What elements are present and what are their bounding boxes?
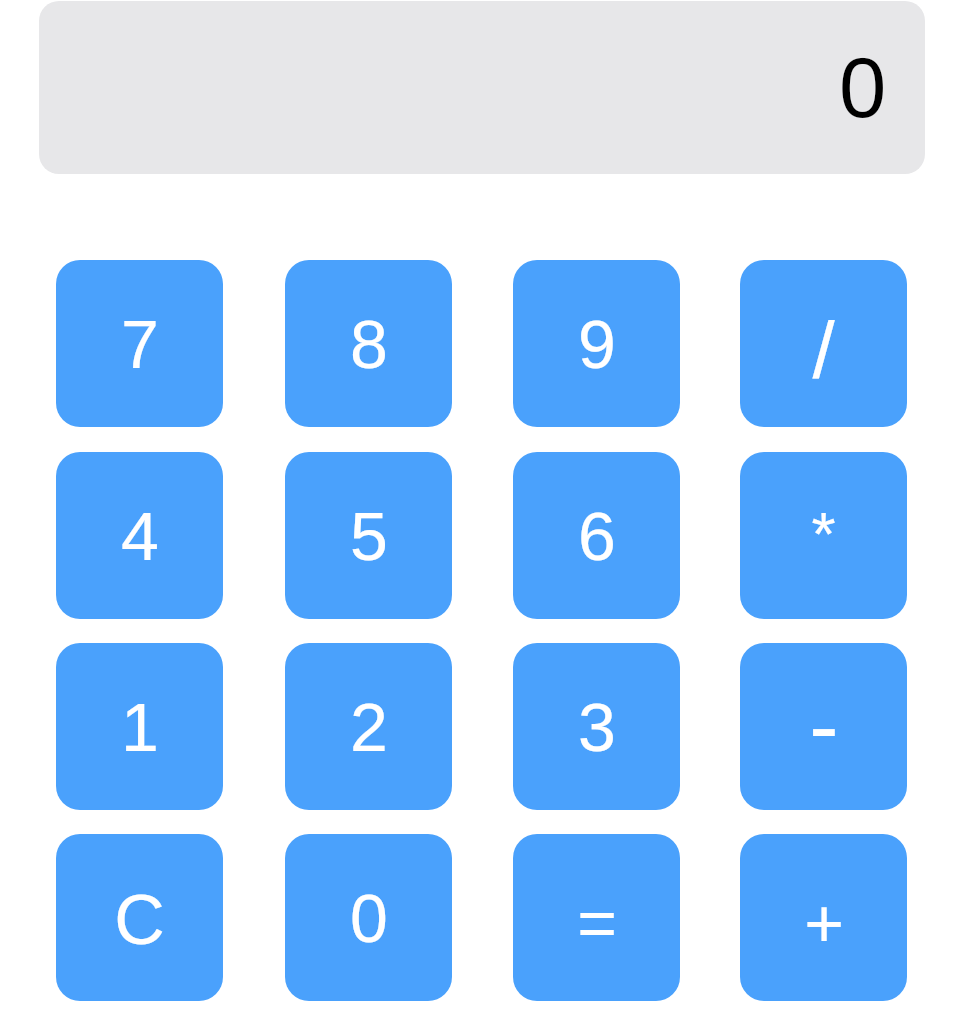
button[interactable]: 0 xyxy=(39,1,925,174)
staticText: / xyxy=(812,306,835,395)
staticText: - xyxy=(809,676,839,774)
staticText: 8 xyxy=(350,306,388,382)
button[interactable]: 9 xyxy=(513,260,680,427)
staticText: C xyxy=(114,881,165,959)
staticText: 4 xyxy=(121,498,159,574)
button[interactable]: C xyxy=(56,834,223,1001)
button[interactable]: 4 xyxy=(56,452,223,619)
button[interactable]: 5 xyxy=(285,452,452,619)
staticText: 7 xyxy=(121,306,159,382)
staticText: + xyxy=(804,885,844,961)
button[interactable]: 1 xyxy=(56,643,223,810)
button[interactable]: 0 xyxy=(285,834,452,1001)
button[interactable]: 2 xyxy=(285,643,452,810)
button[interactable]: * xyxy=(740,452,907,619)
button[interactable]: - xyxy=(740,643,907,810)
button[interactable]: 7 xyxy=(56,260,223,427)
staticText: * xyxy=(811,499,836,568)
staticText: 6 xyxy=(578,498,616,574)
button[interactable]: = xyxy=(513,834,680,1001)
button[interactable]: + xyxy=(740,834,907,1001)
staticText: 2 xyxy=(350,689,388,765)
staticText: 9 xyxy=(578,306,616,382)
staticText: 5 xyxy=(350,498,388,574)
button[interactable]: 3 xyxy=(513,643,680,810)
button[interactable]: 6 xyxy=(513,452,680,619)
button[interactable]: / xyxy=(740,260,907,427)
staticText: 0 xyxy=(350,880,388,956)
staticText: 0 xyxy=(839,40,887,135)
staticText: 1 xyxy=(121,689,159,765)
button[interactable]: 8 xyxy=(285,260,452,427)
staticText: 3 xyxy=(578,689,616,765)
staticText: = xyxy=(577,885,617,961)
